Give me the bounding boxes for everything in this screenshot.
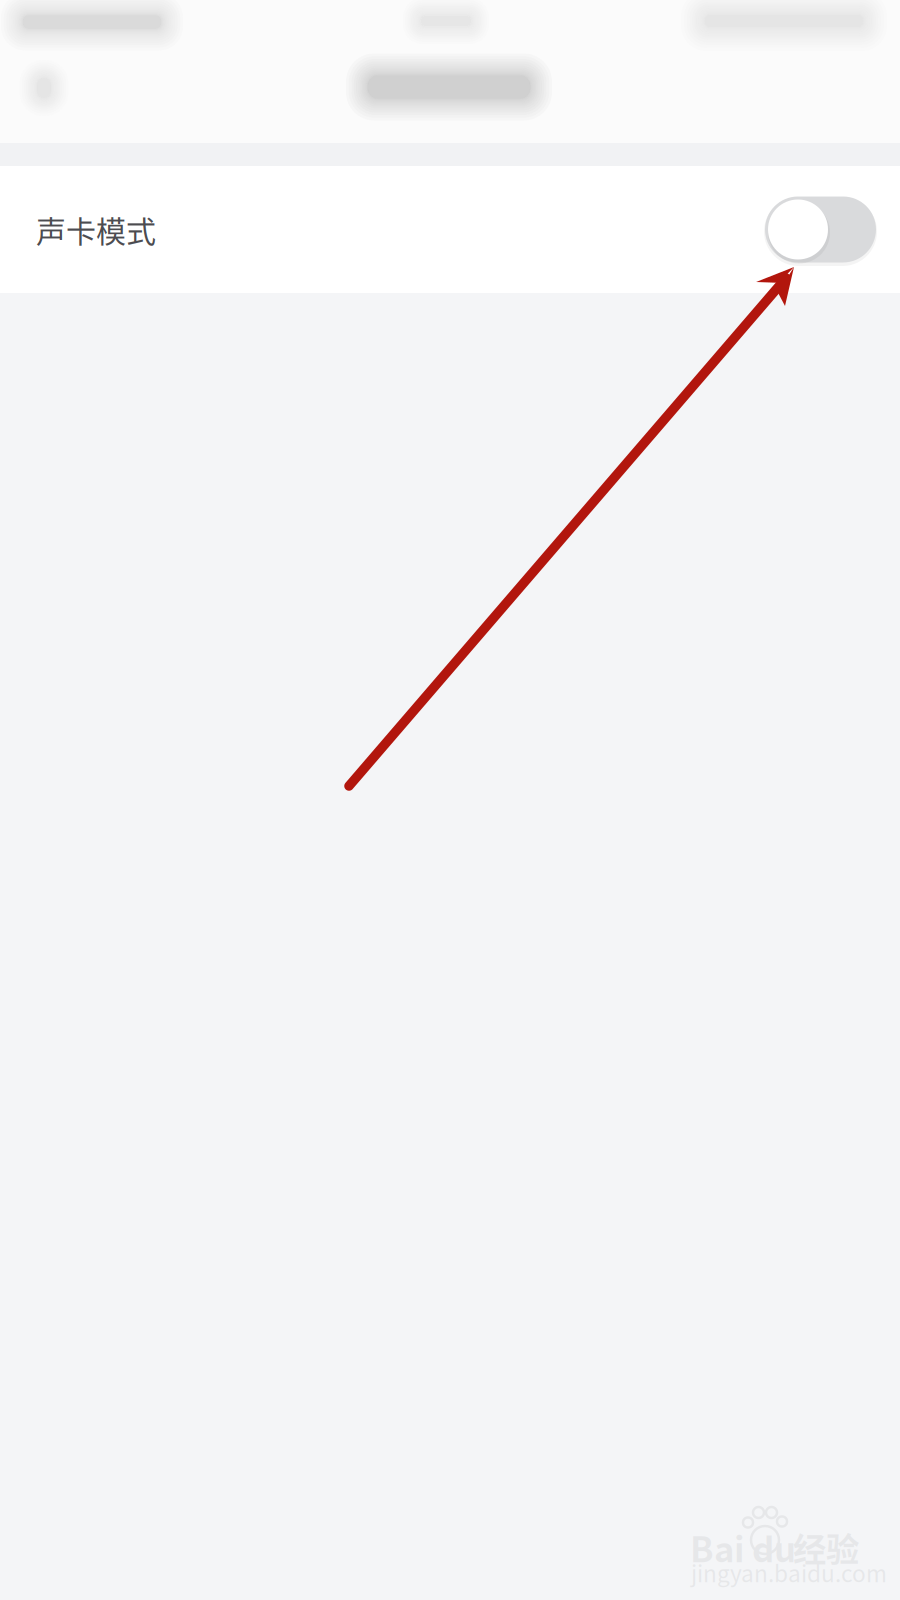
staticText: 经验 xyxy=(793,1523,859,1571)
staticText: 声卡模式 xyxy=(36,208,156,251)
staticText: du xyxy=(752,1522,796,1572)
staticText: jingyan.baidu.com xyxy=(691,1556,887,1589)
button[interactable]: 声卡模式 xyxy=(0,166,900,293)
staticText: Bai xyxy=(690,1522,745,1572)
